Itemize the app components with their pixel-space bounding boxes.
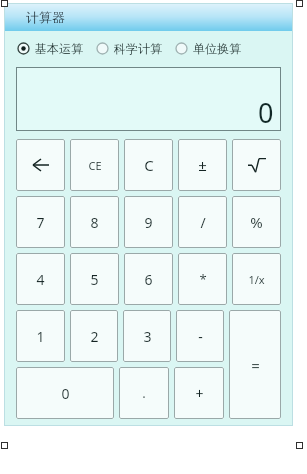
button[interactable]: 1/x	[232, 253, 281, 305]
button[interactable]: 7	[16, 196, 65, 248]
button[interactable]: CE	[70, 139, 119, 191]
staticText: 基本运算	[35, 41, 83, 56]
button[interactable]: 2	[70, 310, 118, 362]
button[interactable]: 基本运算	[17, 41, 83, 56]
button[interactable]: Square root	[232, 139, 281, 191]
staticText: .	[142, 384, 146, 402]
button[interactable]: 科学计算	[96, 41, 162, 56]
button[interactable]: 6	[124, 253, 173, 305]
staticText: 科学计算	[114, 41, 162, 56]
button[interactable]: -	[176, 310, 224, 362]
button[interactable]: 8	[70, 196, 119, 248]
staticText: 3	[143, 327, 152, 346]
button[interactable]: %	[232, 196, 281, 248]
button[interactable]: +	[174, 367, 224, 419]
button[interactable]: .	[119, 367, 169, 419]
staticText: 单位换算	[193, 41, 241, 56]
staticText: -	[198, 327, 203, 346]
staticText: 0	[61, 384, 70, 403]
staticText: =	[251, 355, 260, 375]
button[interactable]: 5	[70, 253, 119, 305]
button[interactable]: 单位换算	[175, 41, 241, 56]
staticText: 5	[90, 270, 99, 289]
staticText: 1/x	[248, 272, 265, 287]
staticText: 8	[90, 213, 99, 232]
staticText: ±	[198, 155, 207, 175]
staticText: C	[144, 155, 154, 175]
staticText: /	[200, 213, 206, 232]
staticText: 9	[144, 213, 153, 232]
staticText: CE	[88, 158, 102, 173]
staticText: 1	[36, 327, 45, 346]
button[interactable]: *	[178, 253, 227, 305]
staticText: 2	[90, 327, 99, 346]
staticText: %	[250, 212, 263, 232]
staticText: 0	[258, 94, 274, 131]
staticText: 4	[36, 270, 45, 289]
button[interactable]: 9	[124, 196, 173, 248]
staticText: 计算器	[26, 9, 65, 25]
button[interactable]: 0	[16, 367, 114, 419]
staticText: +	[195, 384, 204, 403]
button[interactable]: Backspace	[16, 139, 65, 191]
staticText: 7	[36, 213, 45, 232]
button[interactable]: 4	[16, 253, 65, 305]
button[interactable]: /	[178, 196, 227, 248]
button[interactable]: =	[229, 310, 281, 419]
button[interactable]: C	[124, 139, 173, 191]
button[interactable]: ±	[178, 139, 227, 191]
staticText: 6	[144, 270, 153, 289]
staticText: *	[199, 270, 207, 288]
button[interactable]: 1	[16, 310, 65, 362]
button[interactable]: 3	[123, 310, 171, 362]
